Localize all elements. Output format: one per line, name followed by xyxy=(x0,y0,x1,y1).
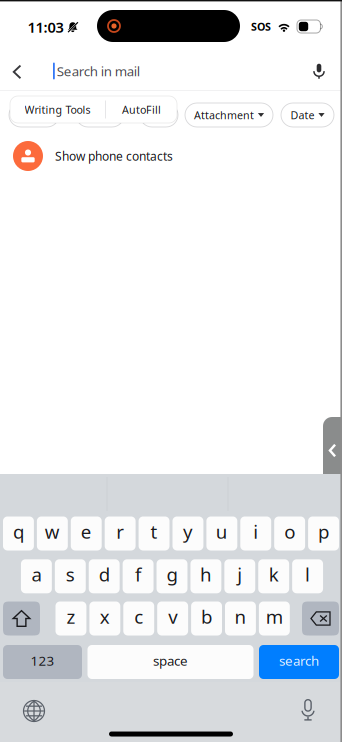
button[interactable]: Dictate xyxy=(301,51,337,91)
button[interactable]: Inbox xyxy=(9,103,59,127)
staticText: h xyxy=(200,562,212,587)
staticText: b xyxy=(201,604,212,629)
staticText: l xyxy=(305,562,310,587)
button[interactable]: m xyxy=(259,601,290,635)
button[interactable]: Writing Tools xyxy=(10,96,105,123)
button[interactable]: k xyxy=(258,559,289,593)
staticText: a xyxy=(31,562,41,587)
button[interactable]: s xyxy=(55,559,86,593)
button[interactable]: To xyxy=(140,103,178,127)
staticText: 11:03 xyxy=(27,17,63,37)
staticText: To xyxy=(148,108,159,122)
button[interactable]: Dictate xyxy=(286,690,330,730)
button[interactable]: Show phone contacts xyxy=(13,134,342,178)
button[interactable]: x xyxy=(89,601,120,635)
button[interactable]: 123 xyxy=(3,645,82,679)
staticText: Inbox xyxy=(14,108,44,122)
button[interactable]: Shift xyxy=(3,601,40,635)
staticText: c xyxy=(134,604,143,629)
staticText: k xyxy=(269,562,279,587)
staticText: AutoFill xyxy=(122,102,161,117)
staticText: j xyxy=(237,562,242,587)
staticText: space xyxy=(153,652,188,669)
staticText: g xyxy=(166,562,177,587)
staticText: Date xyxy=(290,108,314,122)
button[interactable]: z xyxy=(55,601,86,635)
staticText: m xyxy=(266,604,283,629)
staticText: n xyxy=(234,604,246,629)
button[interactable]: p xyxy=(308,516,339,550)
button[interactable]: search xyxy=(259,645,339,679)
staticText: y xyxy=(183,519,193,544)
button[interactable]: y xyxy=(172,516,203,550)
button[interactable]: o xyxy=(274,516,305,550)
button[interactable]: a xyxy=(21,559,52,593)
staticText: search xyxy=(279,652,319,669)
staticText: x xyxy=(100,604,110,629)
button[interactable]: Expand keyboard xyxy=(323,417,342,484)
button[interactable]: n xyxy=(225,601,256,635)
staticText: s xyxy=(66,562,75,587)
button[interactable]: d xyxy=(89,559,120,593)
staticText: z xyxy=(66,604,75,629)
staticText: o xyxy=(284,519,295,544)
staticText: i xyxy=(253,519,258,544)
staticText: q xyxy=(13,519,24,544)
button[interactable]: l xyxy=(292,559,323,593)
staticText: 123 xyxy=(30,652,54,669)
staticText: d xyxy=(99,562,110,587)
button[interactable]: Delete xyxy=(302,601,339,635)
staticText: u xyxy=(216,519,228,544)
button[interactable]: Date xyxy=(281,103,334,127)
staticText: Show phone contacts xyxy=(55,148,173,164)
staticText: SOS xyxy=(251,19,271,34)
button[interactable]: j xyxy=(224,559,255,593)
button[interactable]: space xyxy=(87,645,253,679)
button[interactable]: f xyxy=(123,559,153,593)
button[interactable]: u xyxy=(206,516,237,550)
staticText: Writing Tools xyxy=(25,102,91,117)
staticText: r xyxy=(116,519,124,544)
staticText: e xyxy=(81,519,92,544)
button[interactable]: Attachment xyxy=(185,103,273,127)
staticText: From xyxy=(82,108,108,122)
staticText: w xyxy=(45,519,60,544)
button[interactable]: r xyxy=(105,516,136,550)
button[interactable]: c xyxy=(123,601,154,635)
button[interactable]: h xyxy=(190,559,221,593)
button[interactable]: i xyxy=(240,516,271,550)
button[interactable]: AutoFill xyxy=(106,96,177,123)
staticText: Search in mail xyxy=(57,62,140,80)
button[interactable]: q xyxy=(3,516,34,550)
staticText: t xyxy=(150,519,157,544)
staticText: f xyxy=(135,562,141,587)
button[interactable]: Next keyboard xyxy=(12,691,56,731)
button[interactable]: e xyxy=(71,516,102,550)
button[interactable]: g xyxy=(156,559,187,593)
button[interactable]: t xyxy=(139,516,169,550)
button[interactable]: v xyxy=(157,601,188,635)
button[interactable]: w xyxy=(37,516,68,550)
staticText: Attachment xyxy=(194,108,254,122)
button[interactable]: From xyxy=(76,103,124,127)
staticText: v xyxy=(168,604,177,629)
staticText: p xyxy=(318,519,329,544)
button[interactable]: b xyxy=(191,601,222,635)
button[interactable]: Back xyxy=(0,52,34,92)
